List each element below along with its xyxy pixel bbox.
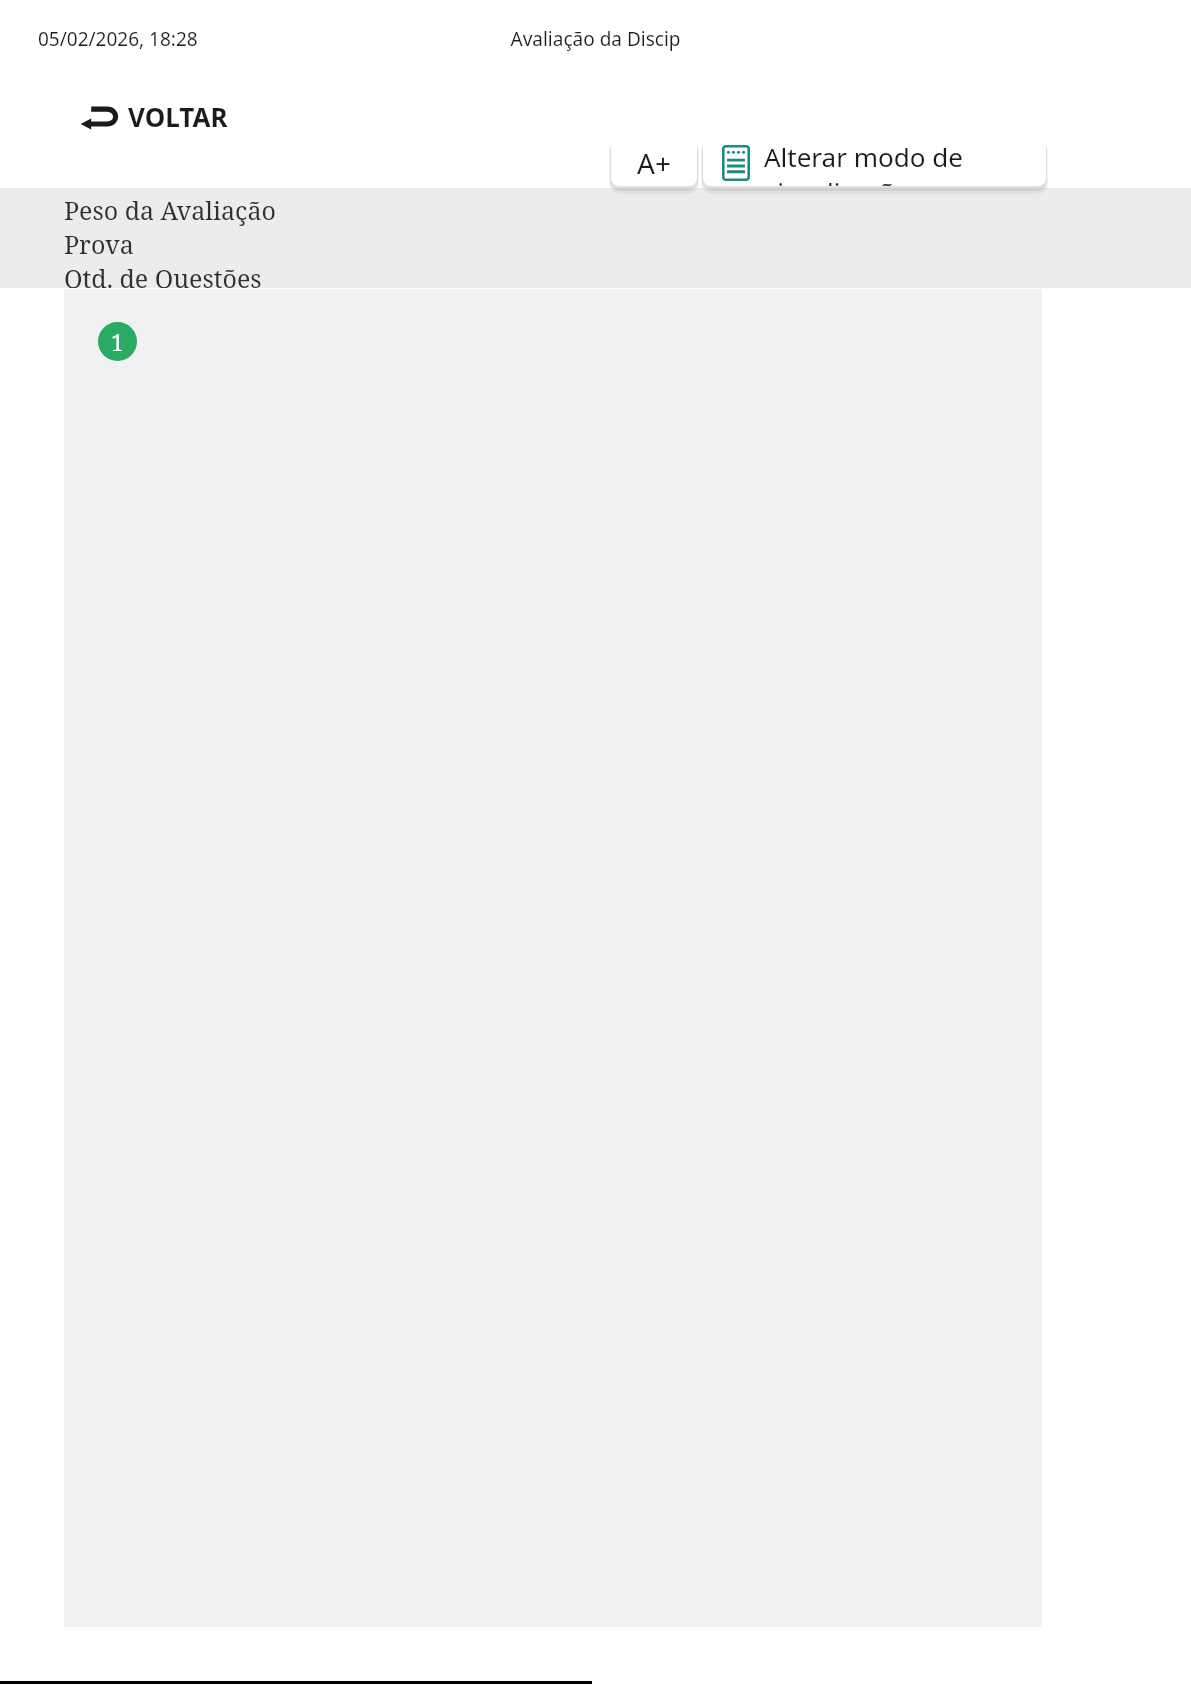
staticText: 1	[111, 326, 124, 357]
staticText: Alterar modo de visualização	[764, 139, 1046, 186]
button[interactable]: A+	[611, 139, 697, 186]
button[interactable]: Alterar modo de visualização	[703, 139, 1046, 186]
staticText: VOLTAR	[128, 99, 228, 134]
staticText: Prova	[64, 227, 134, 261]
staticText: A+	[637, 144, 671, 182]
staticText: Qtd. de Questões	[64, 261, 262, 288]
staticText: 05/02/2026, 18:28	[38, 26, 198, 52]
staticText: Peso da Avaliação	[64, 193, 276, 227]
button[interactable]: 1	[98, 322, 137, 361]
staticText: Avaliação da Discip	[0, 26, 1191, 52]
button[interactable]: VOLTAR	[74, 92, 232, 140]
